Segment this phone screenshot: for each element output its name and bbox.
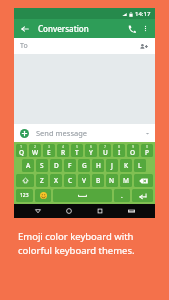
- button[interactable]: 2: [29, 144, 41, 157]
- staticText: U: [103, 148, 108, 157]
- staticText: Z: [40, 176, 44, 185]
- staticText: 0: [146, 144, 149, 149]
- button[interactable]: 4: [57, 144, 69, 157]
- staticText: E: [47, 148, 51, 157]
- staticText: 4: [62, 144, 65, 149]
- button[interactable]: C: [64, 174, 76, 187]
- staticText: J: [111, 161, 113, 170]
- staticText: 123: [20, 192, 29, 199]
- button[interactable]: F: [64, 159, 76, 172]
- button[interactable]: V: [78, 174, 90, 187]
- button[interactable]: X: [50, 174, 62, 187]
- staticText: Send message: [36, 128, 88, 138]
- staticText: M: [123, 176, 129, 185]
- button[interactable]: H: [92, 159, 104, 172]
- button[interactable]: Back: [31, 204, 45, 218]
- button[interactable]: .: [114, 189, 130, 202]
- button[interactable]: To: [14, 38, 155, 54]
- button[interactable]: Emoji: [35, 189, 51, 202]
- button[interactable]: Backspace: [134, 174, 153, 187]
- staticText: G: [82, 161, 87, 170]
- staticText: F: [68, 161, 72, 170]
- button[interactable]: Call: [125, 22, 138, 35]
- button[interactable]: 5: [71, 144, 83, 157]
- button[interactable]: Shift: [16, 174, 34, 187]
- button[interactable]: M: [120, 174, 132, 187]
- staticText: 3: [48, 144, 51, 149]
- staticText: .: [121, 191, 123, 200]
- staticText: A: [26, 161, 31, 170]
- staticText: 14:17: [135, 10, 151, 18]
- button[interactable]: A: [22, 159, 34, 172]
- staticText: R: [61, 148, 66, 157]
- staticText: K: [124, 161, 129, 170]
- button[interactable]: Add contact: [138, 41, 149, 52]
- staticText: Conversation: [38, 23, 89, 34]
- staticText: D: [54, 161, 59, 170]
- staticText: V: [82, 176, 86, 185]
- button[interactable]: 0: [141, 144, 153, 157]
- staticText: B: [96, 176, 101, 185]
- staticText: T: [75, 148, 79, 157]
- button[interactable]: K: [120, 159, 132, 172]
- button[interactable]: 6: [85, 144, 97, 157]
- staticText: Emoji color keyboard with colorful keybo…: [18, 230, 169, 256]
- staticText: I: [118, 148, 121, 157]
- button[interactable]: D: [50, 159, 62, 172]
- button[interactable]: Hide keyboard: [124, 204, 138, 218]
- staticText: C: [68, 176, 73, 185]
- staticText: N: [109, 176, 115, 185]
- staticText: 8: [118, 144, 121, 149]
- button[interactable]: Space: [53, 189, 112, 202]
- staticText: Y: [89, 148, 93, 157]
- staticText: 6: [90, 144, 93, 149]
- staticText: 5: [76, 144, 79, 149]
- staticText: 9: [132, 144, 135, 149]
- button[interactable]: L: [134, 159, 146, 172]
- button[interactable]: Add attachment: [14, 124, 155, 142]
- button[interactable]: 7: [99, 144, 111, 157]
- staticText: X: [54, 176, 58, 185]
- button[interactable]: Z: [36, 174, 48, 187]
- button[interactable]: N: [106, 174, 118, 187]
- staticText: To: [20, 41, 28, 51]
- button[interactable]: 9: [127, 144, 139, 157]
- button[interactable]: Recents: [93, 204, 107, 218]
- button[interactable]: G: [78, 159, 90, 172]
- staticText: 7: [104, 144, 107, 149]
- button[interactable]: B: [92, 174, 104, 187]
- staticText: O: [130, 148, 136, 157]
- staticText: W: [32, 148, 39, 157]
- staticText: 1: [20, 144, 23, 149]
- staticText: 2: [34, 144, 37, 149]
- button[interactable]: 8: [113, 144, 125, 157]
- button[interactable]: Back: [18, 22, 31, 35]
- button[interactable]: 1: [16, 144, 27, 157]
- button[interactable]: Home: [62, 204, 76, 218]
- button[interactable]: J: [106, 159, 118, 172]
- staticText: Q: [19, 148, 25, 157]
- staticText: L: [138, 161, 142, 170]
- button[interactable]: Add attachment: [19, 128, 30, 139]
- button[interactable]: S: [36, 159, 48, 172]
- button[interactable]: 123: [16, 189, 33, 202]
- staticText: P: [145, 148, 149, 157]
- button[interactable]: Enter: [132, 189, 153, 202]
- button[interactable]: More options: [140, 23, 151, 34]
- staticText: H: [96, 161, 101, 170]
- staticText: S: [40, 161, 44, 170]
- button[interactable]: 3: [43, 144, 55, 157]
